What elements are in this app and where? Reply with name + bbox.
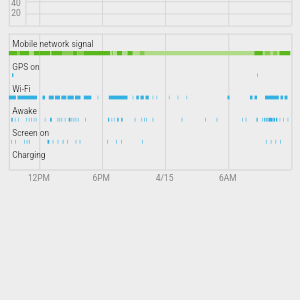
button[interactable]: Battery history chart xyxy=(0,0,300,300)
